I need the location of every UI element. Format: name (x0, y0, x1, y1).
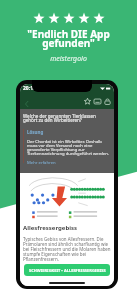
staticText: Allesfressergebiss (23, 224, 78, 232)
staticText: SCHWIERIGKEIT • ALLESFRESSERGEBISS (29, 268, 106, 273)
button[interactable]: Favorit (82, 96, 92, 106)
button[interactable]: Zurück (22, 99, 32, 109)
staticText: meistergolo (0, 54, 137, 64)
staticText: Welche der genannten Tierklassen gehört … (23, 113, 111, 124)
staticText: 20:17 (23, 85, 36, 92)
staticText: "Endlich DIE App gefunden" (0, 27, 137, 50)
button[interactable]: Gesperrt (102, 96, 112, 106)
button[interactable]: Notizen (92, 96, 102, 106)
staticText: Der Chordat ist ein Wirbeltier. Deshalb … (27, 139, 111, 157)
button[interactable]: SCHWIERIGKEIT • ALLESFRESSERGEBISS (24, 264, 110, 276)
staticText: Lösung (27, 129, 44, 135)
staticText: Mehr erfahren (27, 160, 56, 166)
staticText: Typisches Gebiss von Allesfressern. Die … (23, 236, 111, 262)
